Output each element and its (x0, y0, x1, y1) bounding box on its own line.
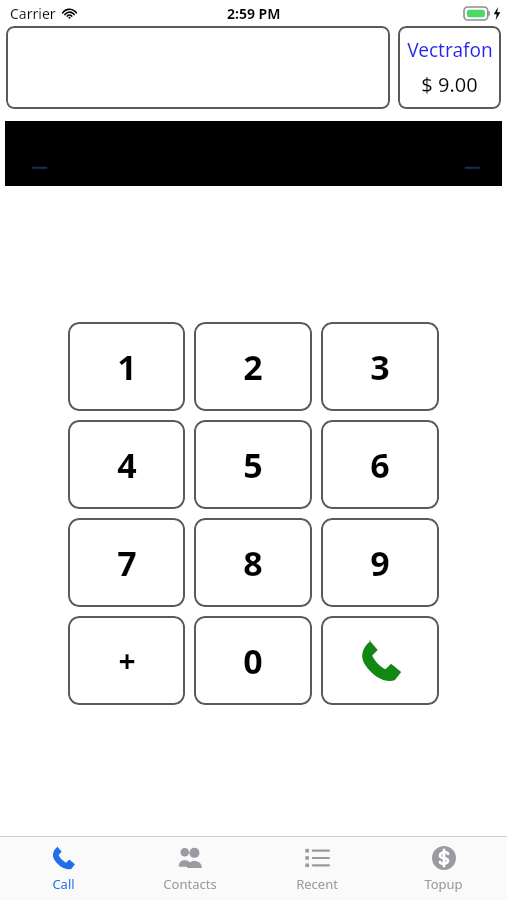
staticText: 0 (243, 638, 263, 684)
staticText: $ 9.00 (421, 71, 478, 98)
button[interactable]: Advertisement banner (5, 121, 502, 186)
staticText: Recent (296, 875, 338, 893)
button[interactable]: + (68, 616, 185, 705)
button[interactable]: 9 (321, 518, 439, 607)
staticText: Call (52, 875, 75, 893)
button[interactable]: 2 (194, 322, 312, 411)
button[interactable]: 5 (194, 420, 312, 509)
staticText: 1 (117, 344, 137, 390)
button[interactable]: 0 (194, 616, 312, 705)
button[interactable]: 1 (68, 322, 185, 411)
button[interactable]: Topup (380, 837, 507, 900)
staticText: 9 (370, 540, 390, 586)
staticText: Contacts (163, 875, 217, 893)
staticText: 8 (243, 540, 263, 586)
button[interactable]: Contacts (126, 837, 253, 900)
staticText: 7 (117, 540, 137, 586)
staticText: 4 (117, 442, 137, 488)
button[interactable]: Call (321, 616, 439, 705)
staticText: Topup (424, 875, 463, 893)
button[interactable]: 3 (321, 322, 439, 411)
button[interactable]: Vectrafon (398, 26, 501, 109)
staticText: Carrier (10, 4, 56, 23)
button[interactable] (6, 26, 390, 109)
staticText: + (118, 640, 136, 681)
staticText: 6 (370, 442, 390, 488)
staticText: 2 (243, 344, 263, 390)
button[interactable]: 4 (68, 420, 185, 509)
button[interactable]: 7 (68, 518, 185, 607)
button[interactable]: 6 (321, 420, 439, 509)
staticText: 2:59 PM (227, 4, 281, 23)
button[interactable]: Call (0, 837, 126, 900)
button[interactable]: Recent (253, 837, 380, 900)
button[interactable]: 8 (194, 518, 312, 607)
staticText: 5 (243, 442, 263, 488)
staticText: 3 (370, 344, 390, 390)
staticText: Vectrafon (407, 37, 493, 63)
